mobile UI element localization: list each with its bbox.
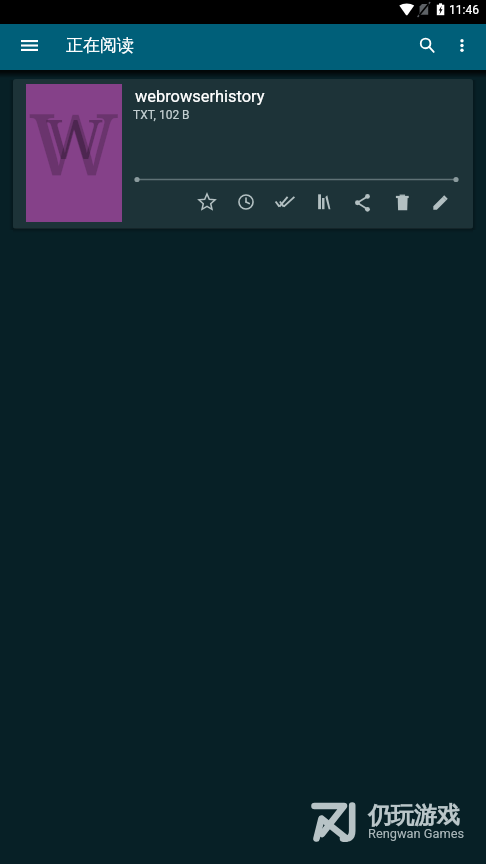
button[interactable]: Move to shelf (304, 184, 343, 220)
button[interactable]: Open navigation drawer (5, 24, 53, 70)
button[interactable]: Search (404, 24, 450, 66)
staticText: 11:46 (449, 3, 479, 17)
staticText: Rengwan Games (368, 826, 465, 841)
staticText: webrowserhistory (135, 87, 265, 106)
staticText: 正在阅读 (66, 35, 134, 56)
button[interactable]: Share (343, 184, 382, 220)
staticText: W (46, 101, 103, 175)
staticText: 仍玩游戏 (368, 801, 460, 830)
button[interactable]: Reading history (226, 184, 265, 220)
button[interactable]: Mark as read (265, 184, 304, 220)
button[interactable]: Delete (382, 184, 421, 220)
button[interactable]: W (13, 79, 473, 229)
staticText: W (29, 84, 119, 200)
button[interactable]: Rename (421, 184, 460, 220)
button[interactable]: Favorite (187, 184, 226, 220)
staticText: TXT, 102 B (133, 108, 190, 122)
button[interactable]: More options (440, 24, 484, 66)
